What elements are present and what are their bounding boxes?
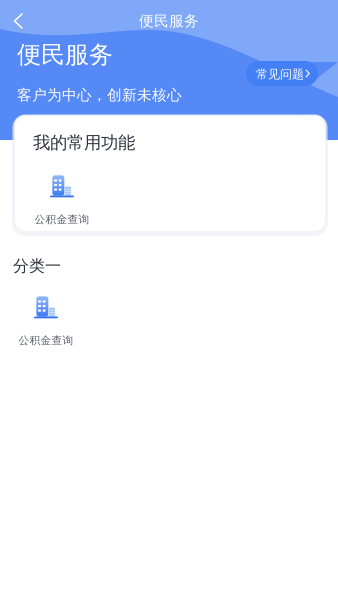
button[interactable]: 返回 [0,0,38,43]
staticText: 常见问题 [256,67,304,82]
staticText: 公积金查询 [34,213,89,226]
button[interactable]: 公积金查询 [8,294,84,347]
staticText: 客户为中心，创新未核心 [17,86,182,104]
button[interactable]: 公积金查询 [24,173,100,226]
staticText: 我的常用功能 [33,132,135,153]
button[interactable]: 常见问题 [246,61,318,86]
staticText: 便民服务 [139,12,199,30]
staticText: 分类一 [13,256,61,276]
staticText: 公积金查询 [18,334,73,347]
staticText: 便民服务 [17,40,113,69]
